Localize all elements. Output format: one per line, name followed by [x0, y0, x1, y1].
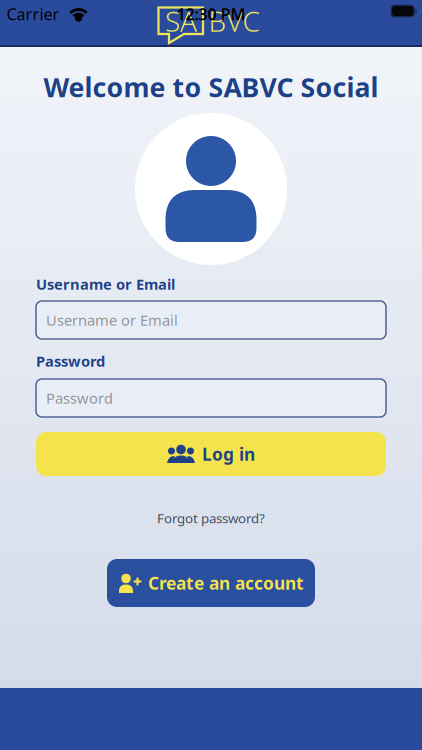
button[interactable]: Forgot password? — [157, 509, 265, 527]
button[interactable]: Log in — [36, 432, 386, 476]
staticText: Password — [46, 388, 113, 408]
staticText: Create an account — [148, 571, 304, 594]
button[interactable]: Username or Email — [36, 301, 386, 339]
staticText: Carrier — [6, 3, 59, 25]
staticText: Forgot password? — [157, 509, 265, 527]
staticText: Username or Email — [46, 310, 178, 330]
staticText: SA — [165, 2, 197, 40]
staticText: Log in — [202, 442, 255, 465]
staticText: Password — [36, 351, 105, 371]
button[interactable]: Password — [36, 379, 386, 417]
staticText: 12:30 PM — [176, 3, 245, 25]
button[interactable]: Create an account — [107, 559, 315, 607]
staticText: Username or Email — [36, 274, 175, 294]
staticText: Welcome to SABVC Social — [43, 69, 378, 105]
staticText: BVC — [208, 2, 259, 40]
